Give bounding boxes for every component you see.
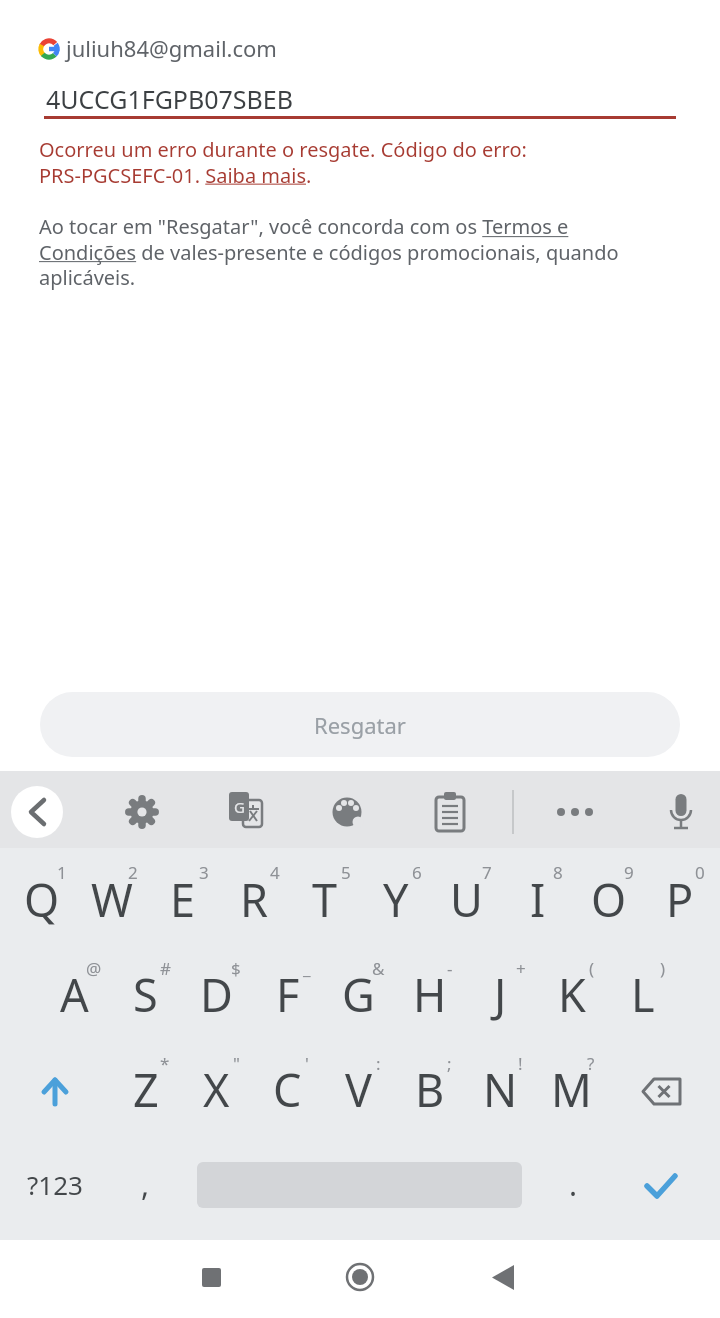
button[interactable]: , (110, 1137, 180, 1232)
staticText: I (530, 869, 546, 930)
button[interactable]: S (110, 947, 181, 1042)
staticText: Ocorreu um erro durante o resgate. Códig… (39, 136, 527, 188)
staticText: 3 (199, 861, 209, 884)
staticText: " (233, 1052, 240, 1075)
button[interactable] (114, 784, 170, 840)
staticText: ?123 (27, 1167, 83, 1202)
button[interactable]: ?123 (0, 1137, 110, 1232)
staticText: : (376, 1052, 381, 1075)
staticText: - (447, 957, 453, 980)
staticText: R (240, 869, 268, 930)
staticText: X (203, 1059, 230, 1120)
staticText: D (200, 964, 233, 1025)
staticText: P (666, 869, 694, 930)
button[interactable]: W (76, 852, 147, 947)
button[interactable]: H (394, 947, 465, 1042)
staticText: Ao tocar em "Resgatar", você concorda co… (39, 213, 619, 290)
staticText: Y (383, 869, 409, 930)
staticText: V (345, 1059, 373, 1120)
staticText: ! (518, 1052, 523, 1075)
staticText: 2 (128, 861, 138, 884)
button[interactable]: Q (6, 852, 77, 947)
button[interactable]: . (540, 1137, 606, 1232)
staticText: @ (86, 957, 102, 980)
staticText: ; (447, 1052, 452, 1075)
staticText: 4UCCG1FGPB07SBEB (46, 82, 293, 116)
button[interactable]: F (252, 947, 323, 1042)
staticText: W (91, 869, 133, 930)
staticText: 0 (695, 861, 705, 884)
button[interactable]: V (323, 1042, 394, 1137)
staticText: juliuh84@gmail.com (66, 33, 277, 63)
button[interactable]: N (465, 1042, 536, 1137)
button[interactable]: O (573, 852, 644, 947)
staticText: ' (305, 1052, 309, 1075)
staticText: $ (231, 957, 241, 980)
staticText: C (273, 1059, 302, 1120)
button[interactable]: juliuh84@gmail.com (40, 30, 340, 66)
button[interactable]: J (465, 947, 536, 1042)
staticText: ( (589, 957, 595, 980)
staticText: K (558, 964, 586, 1025)
staticText: + (516, 957, 526, 980)
staticText: 8 (553, 861, 563, 884)
button[interactable] (217, 784, 273, 840)
button[interactable]: G (323, 947, 394, 1042)
button[interactable]: U (431, 852, 502, 947)
button[interactable]: Resgatar (40, 692, 680, 757)
staticText: O (591, 869, 627, 930)
staticText: _ (303, 957, 311, 980)
button[interactable]: Z (110, 1042, 181, 1137)
staticText: # (160, 957, 171, 980)
button[interactable] (610, 1042, 720, 1137)
button[interactable] (0, 1042, 110, 1137)
button[interactable]: I (502, 852, 573, 947)
staticText: L (631, 964, 655, 1025)
staticText: S (133, 964, 158, 1025)
button[interactable] (422, 784, 478, 840)
staticText: 9 (624, 861, 634, 884)
button[interactable] (330, 1248, 390, 1308)
staticText: T (312, 869, 338, 930)
staticText: , (141, 1164, 150, 1205)
staticText: J (494, 964, 507, 1025)
button[interactable] (475, 1248, 535, 1308)
button[interactable]: K (536, 947, 607, 1042)
button[interactable] (182, 1248, 242, 1308)
button[interactable] (320, 784, 376, 840)
button[interactable]: Y (360, 852, 431, 947)
staticText: Q (24, 869, 60, 930)
button[interactable] (610, 1137, 720, 1232)
button[interactable] (547, 784, 603, 840)
button[interactable]: M (536, 1042, 607, 1137)
staticText: Z (133, 1059, 159, 1120)
staticText: G (234, 797, 245, 817)
button[interactable]: P (644, 852, 715, 947)
staticText: ) (660, 957, 666, 980)
button[interactable]: C (252, 1042, 323, 1137)
staticText: . (569, 1164, 578, 1205)
staticText: 7 (482, 861, 492, 884)
staticText: Resgatar (314, 710, 406, 740)
button[interactable]: L (607, 947, 678, 1042)
staticText: F (276, 964, 300, 1025)
staticText: U (450, 869, 483, 930)
staticText: G (342, 964, 375, 1025)
button[interactable]: E (147, 852, 218, 947)
staticText: E (170, 869, 196, 930)
staticText: B (415, 1059, 445, 1120)
staticText: * (160, 1052, 170, 1075)
staticText: ? (587, 1052, 595, 1075)
button[interactable]: B (394, 1042, 465, 1137)
button[interactable]: X (181, 1042, 252, 1137)
button[interactable]: A (39, 947, 110, 1042)
staticText: & (372, 957, 385, 980)
button[interactable]: T (289, 852, 360, 947)
staticText: 6 (412, 861, 422, 884)
button[interactable]: D (181, 947, 252, 1042)
button[interactable] (653, 784, 709, 840)
button[interactable] (11, 786, 63, 838)
staticText: N (483, 1059, 518, 1120)
button[interactable]: R (218, 852, 289, 947)
